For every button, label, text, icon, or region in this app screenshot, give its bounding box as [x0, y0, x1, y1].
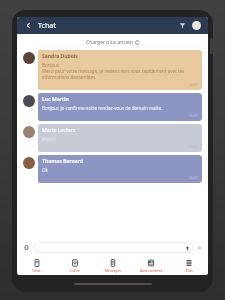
staticText: 12:45 [188, 113, 198, 118]
staticText: Tchat [32, 268, 41, 273]
button[interactable]: Luc Martin [23, 93, 202, 121]
staticText: Ok [42, 167, 48, 173]
staticText: Coffre [70, 268, 80, 273]
button[interactable]: Coffre [56, 256, 94, 275]
staticText: Messages [105, 268, 121, 273]
button[interactable]: Messages [94, 256, 132, 275]
button[interactable]: Abonnements [132, 256, 170, 275]
staticText: Marie Leclerc [42, 127, 76, 134]
button[interactable]: Marie Leclerc [23, 124, 202, 152]
staticText: Bonjour, je confirme notre rendez-vous d… [42, 105, 163, 111]
staticText: Thomas Bernard [42, 158, 84, 165]
button[interactable]: Sandra Dubois [23, 50, 202, 90]
button[interactable]: Filtrer [176, 19, 189, 32]
staticText: Bonjour, Merci pour votre message, je re… [42, 62, 198, 80]
button[interactable]: Charger plus ancien [82, 38, 144, 47]
button[interactable]: Micro [34, 242, 193, 253]
staticText: Luc Martin [42, 96, 69, 103]
staticText: Merci ! [42, 136, 57, 142]
staticText: Abonnements [140, 268, 163, 273]
staticText: 12:45 [188, 82, 198, 87]
button[interactable]: Plus [170, 256, 208, 275]
button[interactable]: Envoyer [195, 243, 204, 252]
button[interactable]: Joindre un fichier [21, 242, 32, 253]
staticText: 12:45 [188, 144, 198, 149]
button[interactable]: Tchat [17, 256, 56, 275]
staticText: Sandra Dubois [42, 53, 78, 60]
button[interactable]: Micro [184, 245, 190, 251]
staticText: 12:45 [188, 175, 198, 180]
button[interactable]: Thomas Bernard [23, 155, 202, 183]
staticText: Tchat [38, 21, 56, 31]
staticText: Charger plus ancien [86, 39, 133, 46]
staticText: Plus [186, 268, 193, 273]
button[interactable]: Compte [190, 19, 203, 32]
button[interactable]: Retour [22, 19, 35, 32]
